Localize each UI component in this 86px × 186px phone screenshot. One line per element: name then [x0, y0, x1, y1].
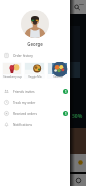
staticText: Veggie Mix: [28, 75, 42, 79]
staticText: Order history: [13, 54, 33, 58]
other: Search: [73, 3, 81, 11]
staticText: Friends invites: [13, 90, 35, 94]
button[interactable]: Notifications: [0, 119, 70, 130]
button[interactable]: Received orders: [0, 108, 70, 119]
button[interactable]: Friends invites: [0, 86, 70, 97]
staticText: Notifications: [13, 123, 32, 127]
button[interactable]: Profile photo: [21, 10, 49, 38]
staticText: Strawberry cup: [3, 75, 22, 79]
button[interactable]: Sea mix: [47, 62, 68, 79]
staticText: 1: [65, 90, 67, 94]
staticText: Track my order: [13, 101, 36, 105]
staticText: Received orders: [13, 112, 37, 116]
button[interactable]: Order history: [0, 50, 70, 61]
staticText: —: [79, 1, 85, 8]
other: Profile tab: [75, 177, 82, 184]
staticText: Sea mix: [53, 75, 63, 79]
staticText: 1: [65, 112, 67, 116]
staticText: George: [0, 41, 70, 47]
button[interactable]: Track my order: [0, 97, 70, 108]
button[interactable]: Strawberry cup: [2, 62, 22, 79]
button[interactable]: Veggie Mix: [24, 62, 45, 79]
staticText: 50%: [72, 113, 83, 120]
